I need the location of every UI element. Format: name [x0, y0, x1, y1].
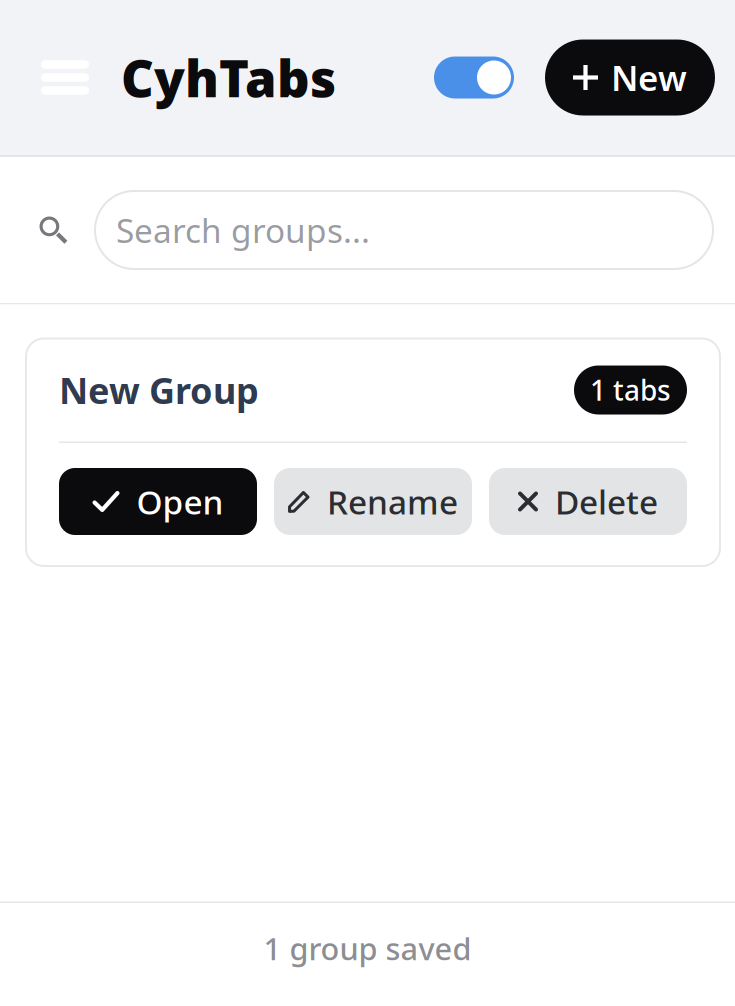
button[interactable]: New	[545, 39, 715, 115]
staticText: Rename	[327, 479, 458, 524]
button[interactable]: Open	[59, 468, 257, 535]
button[interactable]: Toggle	[434, 56, 514, 98]
button[interactable]: Delete	[489, 468, 687, 535]
staticText: Delete	[555, 479, 658, 524]
staticText: New	[611, 54, 687, 100]
button[interactable]: Menu	[41, 35, 89, 119]
button[interactable]: Search groups...	[95, 191, 713, 269]
staticText: CyhTabs	[121, 44, 336, 111]
button[interactable]: Rename	[274, 468, 472, 535]
staticText: Open	[136, 479, 223, 524]
staticText: Search groups...	[116, 208, 370, 252]
staticText: 1 group saved	[263, 928, 471, 969]
staticText: 1 tabs	[590, 371, 671, 409]
staticText: New Group	[59, 366, 259, 414]
